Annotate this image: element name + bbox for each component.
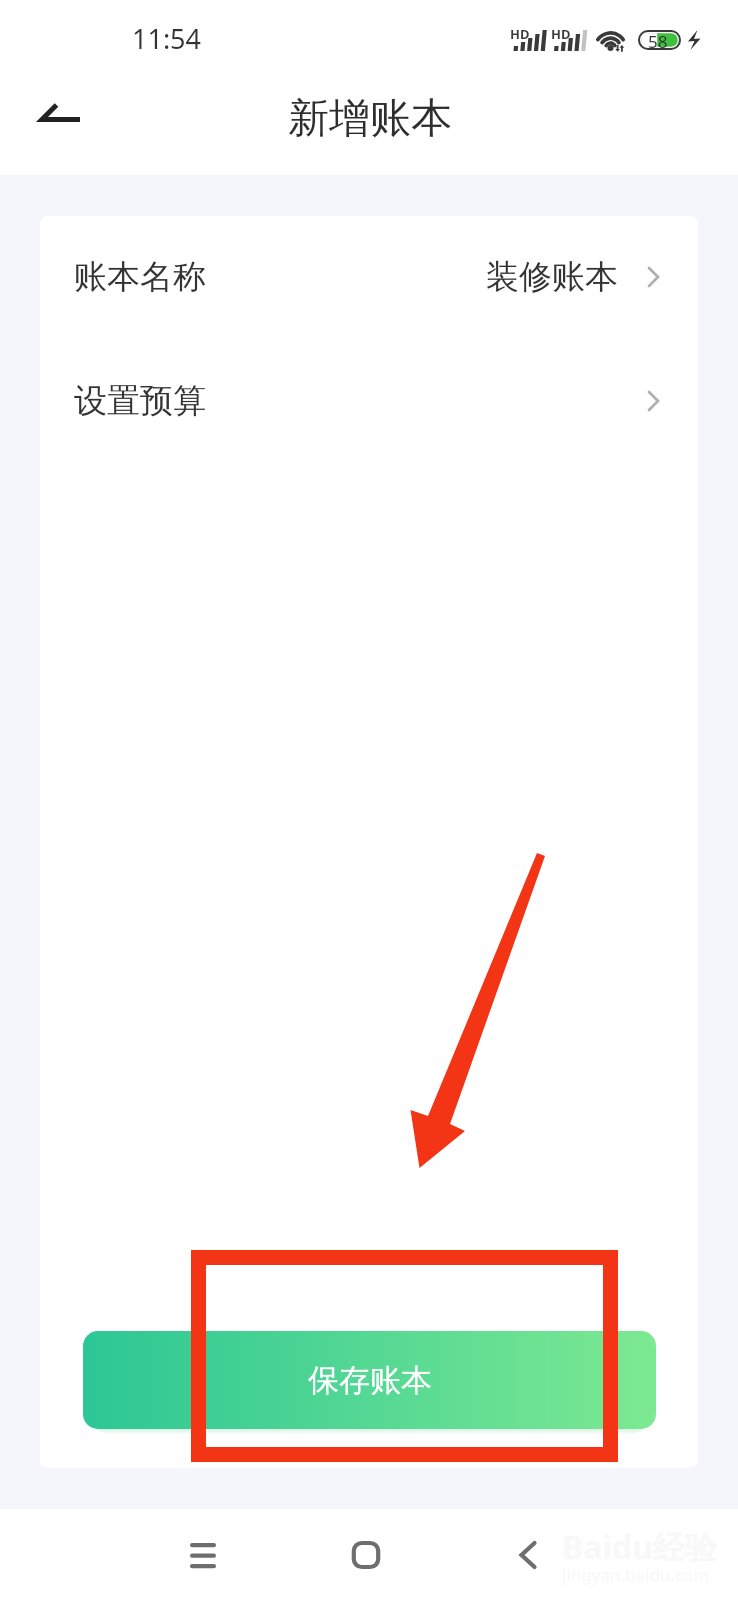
staticText: 58 [648,30,668,53]
staticText: 11:54 [132,20,202,57]
button[interactable]: Home [321,1510,411,1600]
staticText: 保存账本 [308,1361,432,1400]
button[interactable]: 账本名称 [40,216,698,338]
button[interactable]: Back [12,80,96,160]
staticText: 装修账本 [486,256,618,298]
button[interactable]: 设置预算 [40,340,698,462]
staticText: HD [510,25,530,43]
staticText: 设置预算 [74,380,206,422]
button[interactable]: Recent apps [158,1510,248,1600]
staticText: 新增账本 [288,93,452,145]
button[interactable]: Back [483,1510,573,1600]
staticText: HD [551,25,571,43]
staticText: Baidu经验 [562,1525,718,1569]
staticText: 账本名称 [74,256,206,298]
button[interactable]: 保存账本 [83,1331,656,1429]
